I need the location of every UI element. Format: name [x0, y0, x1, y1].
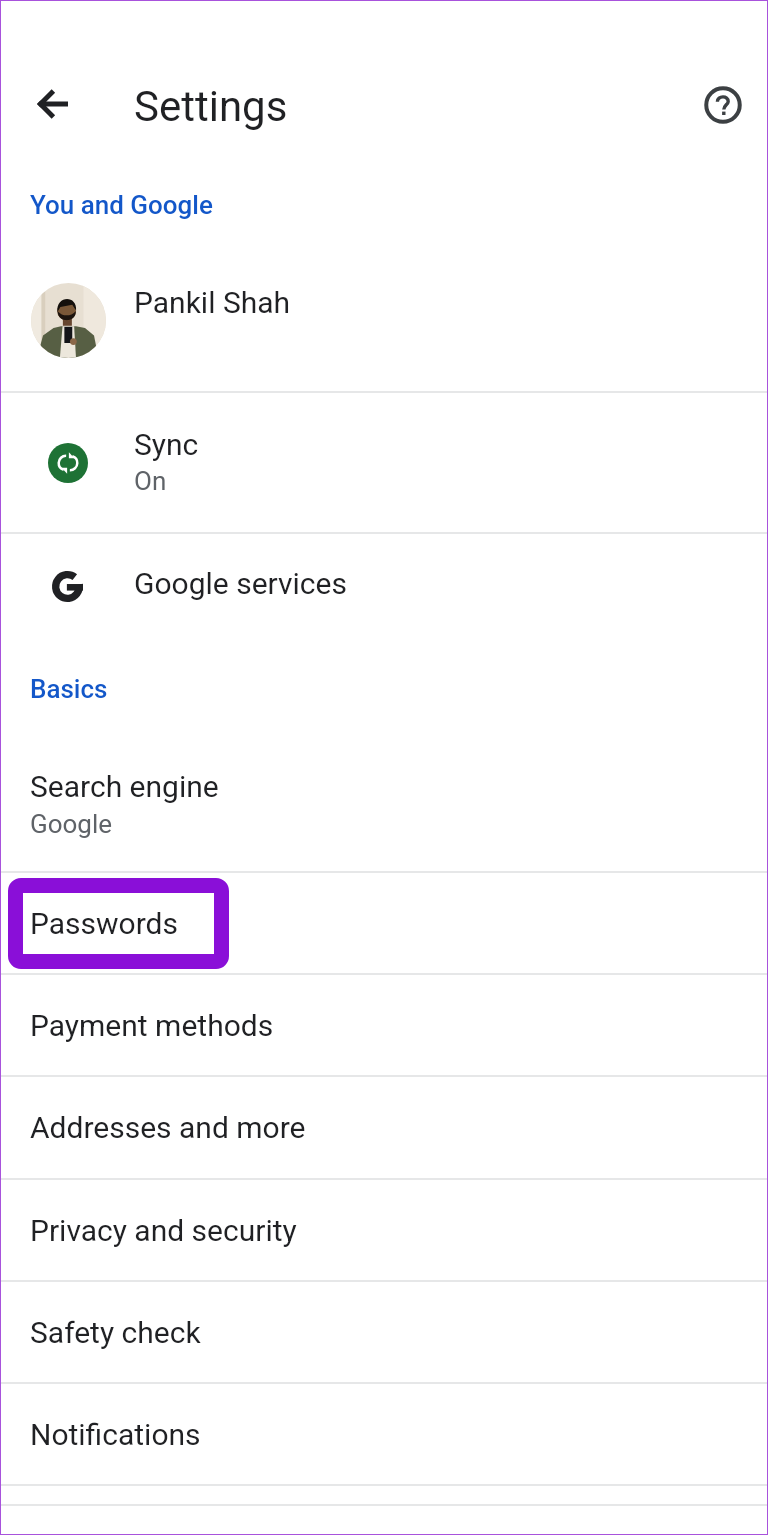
- staticText: Google services: [134, 566, 347, 601]
- button[interactable]: Sync: [0, 393, 768, 533]
- staticText: Settings: [134, 82, 288, 131]
- staticText: Payment methods: [30, 1008, 274, 1043]
- button[interactable]: Addresses and more: [0, 1076, 768, 1178]
- button[interactable]: Back: [17, 68, 89, 140]
- staticText: Search engine: [30, 769, 219, 804]
- button[interactable]: Safety check: [0, 1281, 768, 1383]
- staticText: Addresses and more: [30, 1110, 306, 1145]
- button[interactable]: Privacy and security: [0, 1179, 768, 1281]
- button[interactable]: Passwords: [0, 872, 768, 974]
- staticText: Sync: [134, 427, 199, 462]
- staticText: Pankil Shah: [134, 285, 291, 320]
- button[interactable]: Payment methods: [0, 974, 768, 1076]
- staticText: You and Google: [30, 190, 213, 220]
- button[interactable]: Help: [687, 69, 758, 140]
- staticText: On: [134, 466, 167, 496]
- button[interactable]: Notifications: [0, 1383, 768, 1485]
- button[interactable]: Pankil Shah: [0, 244, 768, 391]
- button[interactable]: Google services: [0, 535, 768, 638]
- staticText: Google: [30, 809, 113, 839]
- staticText: Notifications: [30, 1417, 201, 1452]
- staticText: Privacy and security: [30, 1213, 297, 1248]
- staticText: Safety check: [30, 1315, 201, 1350]
- staticText: Passwords: [30, 906, 178, 941]
- button[interactable]: Search engine: [0, 733, 768, 871]
- staticText: Basics: [30, 674, 108, 704]
